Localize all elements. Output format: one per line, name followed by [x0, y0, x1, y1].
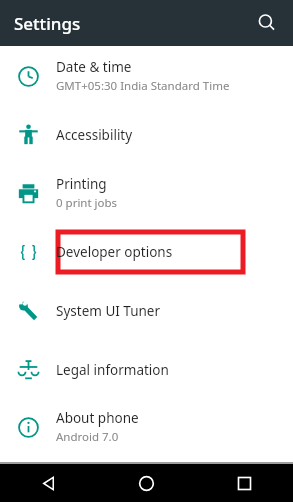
staticText: GMT+05:30 India Standard Time — [56, 78, 230, 94]
staticText: About phone — [56, 409, 139, 427]
staticText: System UI Tuner — [56, 302, 161, 320]
staticText: 0 print jobs — [56, 195, 118, 211]
button[interactable]: Back — [0, 464, 97, 502]
button[interactable]: Accessibility — [0, 106, 293, 163]
button[interactable]: About phone — [0, 398, 293, 456]
staticText: Printing — [56, 175, 107, 193]
staticText: Developer options — [56, 243, 173, 261]
button[interactable]: Printing — [0, 163, 293, 223]
staticText: Date & time — [56, 58, 132, 76]
staticText: Legal information — [56, 361, 169, 379]
staticText: Android 7.0 — [56, 429, 119, 445]
button[interactable]: Developer options — [0, 223, 293, 281]
button[interactable]: Date & time — [0, 46, 293, 106]
staticText: Settings — [14, 12, 81, 35]
button[interactable]: Legal information — [0, 341, 293, 398]
button[interactable]: System UI Tuner — [0, 281, 293, 341]
staticText: Accessibility — [56, 126, 133, 144]
button[interactable]: Home — [97, 464, 195, 502]
button[interactable]: Search — [251, 7, 283, 39]
button[interactable]: Recent apps — [195, 464, 293, 502]
